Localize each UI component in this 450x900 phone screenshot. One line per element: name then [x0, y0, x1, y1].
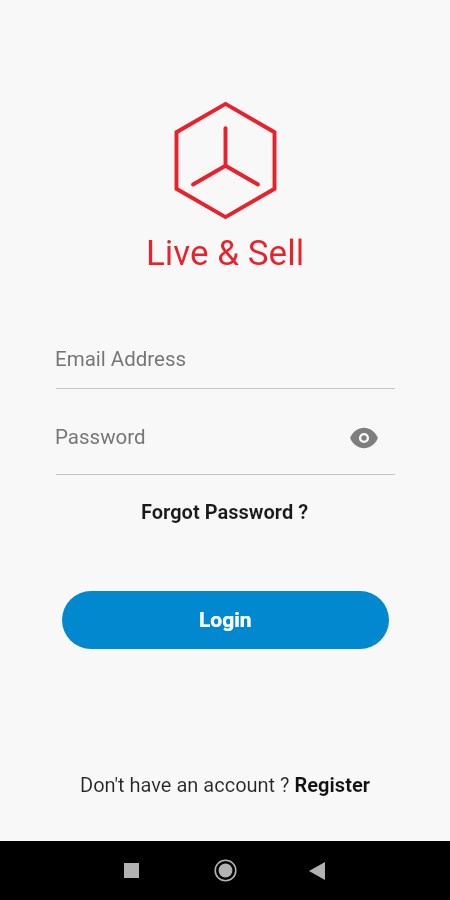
button[interactable]: Email Address — [56, 340, 394, 388]
button[interactable]: Login — [62, 591, 389, 649]
button[interactable]: Show password — [348, 422, 380, 454]
button[interactable]: Forgot Password ? — [131, 496, 319, 527]
staticText: Don't have an account ? Register — [80, 773, 370, 796]
staticText: Password — [55, 425, 146, 449]
staticText: Live & Sell — [146, 233, 305, 274]
button[interactable]: Password — [56, 418, 394, 466]
staticText: Login — [199, 608, 252, 633]
button[interactable]: Home — [211, 856, 240, 885]
staticText: Email Address — [55, 347, 187, 371]
staticText: Forgot Password ? — [141, 500, 309, 523]
button[interactable]: Recent apps — [117, 856, 146, 885]
button[interactable]: Don't have an account ? Register — [70, 770, 380, 799]
button[interactable]: Back — [302, 856, 331, 885]
